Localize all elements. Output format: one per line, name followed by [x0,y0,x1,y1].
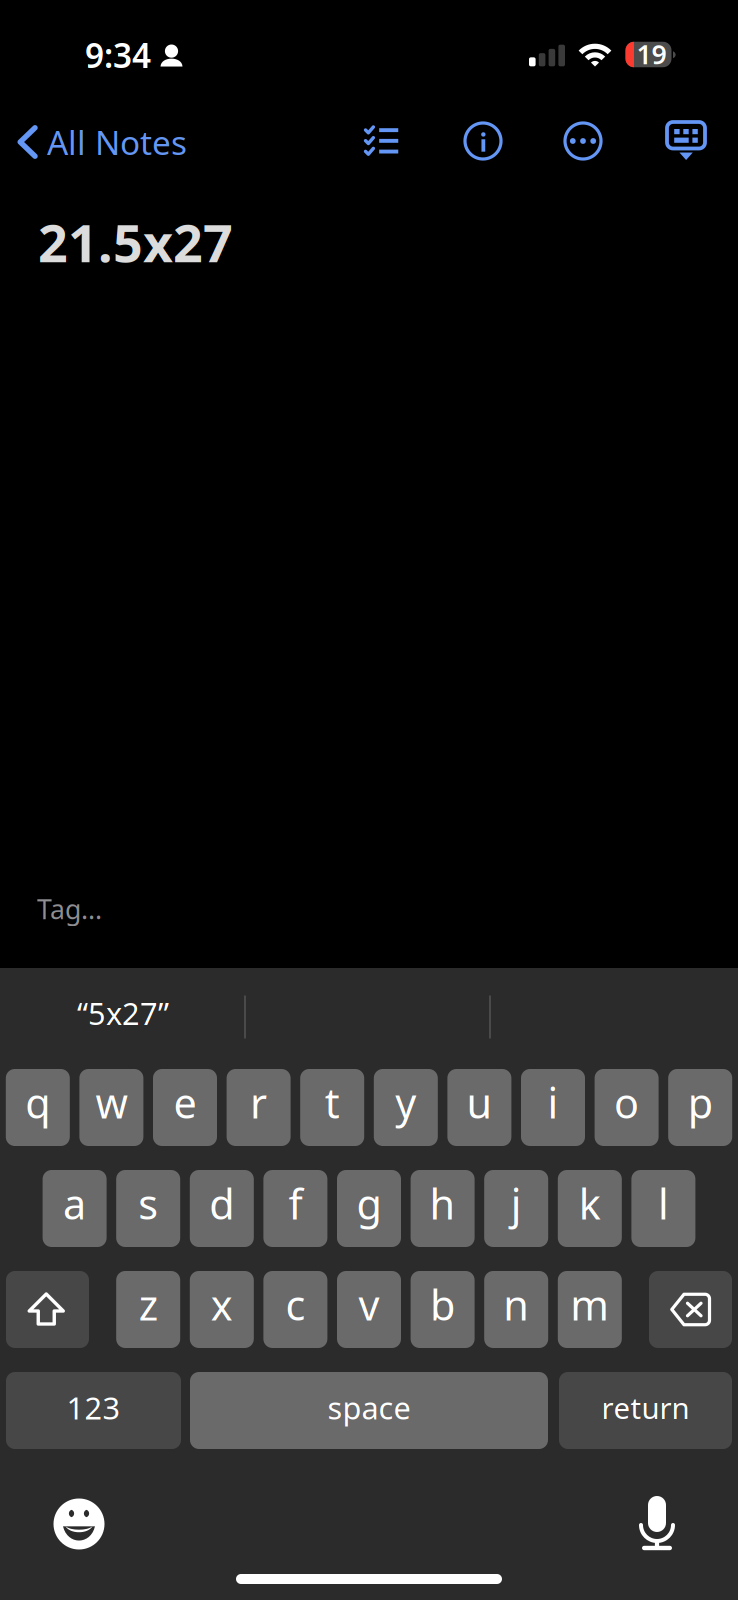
button[interactable]: Shift [6,1271,89,1348]
button[interactable]: w [79,1069,143,1146]
button[interactable]: “5x27” [10,982,236,1044]
button[interactable]: v [337,1271,401,1348]
staticText: 9:34 [85,33,151,77]
staticText: e [173,1075,196,1130]
staticText: z [139,1277,158,1332]
staticText: a [63,1176,86,1231]
staticText: t [325,1075,340,1130]
staticText: n [503,1277,529,1332]
staticText: 19 [636,36,666,72]
button[interactable]: d [190,1170,254,1247]
staticText: 21.5x27 [38,207,233,277]
staticText: m [570,1277,609,1332]
staticText: d [209,1176,234,1231]
button[interactable]: space [190,1372,548,1449]
button[interactable]: y [374,1069,438,1146]
button[interactable]: 123 [6,1372,181,1449]
button[interactable]: m [558,1271,622,1348]
staticText: “5x27” [77,993,169,1033]
button[interactable]: o [595,1069,659,1146]
staticText: s [138,1176,158,1231]
button[interactable]: h [411,1170,475,1247]
staticText: f [288,1176,302,1231]
button[interactable]: i [521,1069,585,1146]
staticText: p [688,1075,713,1130]
button[interactable]: u [447,1069,511,1146]
staticText: Tag... [37,891,102,927]
button[interactable]: Dictate [629,1495,685,1551]
staticText: h [430,1176,456,1231]
staticText: c [285,1277,305,1332]
button[interactable]: e [153,1069,217,1146]
button[interactable]: t [300,1069,364,1146]
staticText: o [614,1075,639,1130]
button[interactable]: All Notes [0,105,204,179]
button[interactable]: l [631,1170,695,1247]
button[interactable]: r [227,1069,291,1146]
staticText: v [358,1277,379,1332]
button[interactable]: Checklist [344,104,418,176]
staticText: 123 [66,1387,120,1428]
staticText: y [395,1075,416,1130]
button[interactable]: f [263,1170,327,1247]
button[interactable]: g [337,1170,401,1247]
button[interactable]: k [558,1170,622,1247]
staticText: g [356,1176,381,1231]
button[interactable]: More [546,105,620,177]
button[interactable]: p [668,1069,732,1146]
staticText: u [466,1075,492,1130]
button[interactable]: q [6,1069,70,1146]
button[interactable]: Info [446,105,520,177]
staticText: b [430,1277,455,1332]
staticText: All Notes [47,120,187,164]
button[interactable]: b [411,1271,475,1348]
button[interactable]: Hide Keyboard [649,105,723,177]
staticText: r [250,1075,267,1130]
button[interactable]: x [190,1271,254,1348]
button[interactable]: n [484,1271,548,1348]
button[interactable]: Emoji [51,1496,107,1552]
button[interactable]: z [116,1271,180,1348]
button[interactable]: Delete [649,1271,732,1348]
button[interactable]: return [559,1372,732,1449]
staticText: space [327,1387,410,1428]
button[interactable]: a [43,1170,107,1247]
button[interactable]: c [263,1271,327,1348]
staticText: w [95,1075,127,1130]
button[interactable]: s [116,1170,180,1247]
button[interactable]: j [484,1170,548,1247]
staticText: k [579,1176,601,1231]
staticText: return [601,1388,689,1427]
staticText: l [658,1176,669,1231]
staticText: i [547,1075,558,1130]
staticText: q [25,1075,50,1130]
staticText: x [211,1277,233,1332]
staticText: j [511,1176,522,1231]
